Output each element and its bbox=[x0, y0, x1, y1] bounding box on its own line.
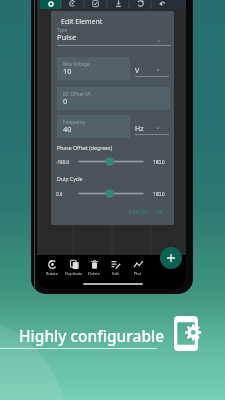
staticText: Edit Element bbox=[61, 17, 103, 27]
staticText: 0.0 bbox=[56, 191, 63, 197]
staticText: Duty Cycle bbox=[57, 175, 83, 182]
button[interactable]: Add element bbox=[160, 247, 182, 269]
staticText: Delete bbox=[88, 271, 100, 276]
button[interactable]: Save bbox=[107, 0, 130, 9]
staticText: 0 bbox=[63, 96, 68, 106]
staticText: Duplicate bbox=[65, 271, 83, 276]
button[interactable]: Frequency bbox=[57, 115, 130, 138]
staticText: Rotate bbox=[46, 271, 58, 276]
button[interactable]: Rotate bbox=[42, 255, 62, 276]
staticText: CANCEL bbox=[129, 209, 148, 216]
button[interactable]: Checklist bbox=[84, 0, 107, 9]
button[interactable]: Record bbox=[40, 0, 61, 9]
button[interactable]: Plot bbox=[128, 255, 148, 276]
staticText: 10 bbox=[63, 66, 72, 76]
staticText: 40 bbox=[63, 124, 72, 134]
staticText: Plot bbox=[134, 271, 142, 276]
staticText: OK bbox=[156, 209, 164, 216]
staticText: Type bbox=[57, 27, 68, 33]
button[interactable] bbox=[77, 156, 145, 167]
button[interactable]: CANCEL bbox=[127, 207, 150, 218]
button[interactable]: Refresh bbox=[129, 0, 152, 9]
button[interactable]: DC Offset (V) bbox=[57, 87, 170, 110]
staticText: Hz bbox=[135, 124, 144, 134]
staticText: -180.0 bbox=[56, 159, 70, 165]
button[interactable]: Undo bbox=[151, 0, 174, 9]
staticText: 100.0 bbox=[153, 191, 165, 197]
staticText: V bbox=[135, 66, 140, 76]
staticText: Frequency bbox=[63, 119, 86, 125]
button[interactable] bbox=[77, 188, 145, 199]
staticText: Highly configurable bbox=[19, 325, 165, 346]
staticText: Phase Offset (degrees) bbox=[57, 144, 113, 151]
button[interactable]: Duplicate bbox=[64, 255, 84, 276]
button[interactable]: Edit bbox=[105, 255, 125, 276]
staticText: DC Offset (V) bbox=[63, 91, 91, 97]
staticText: 180.0 bbox=[153, 159, 165, 165]
button[interactable]: Delete bbox=[84, 255, 104, 276]
staticText: Max Voltage bbox=[63, 61, 90, 67]
staticText: Pulse bbox=[57, 32, 77, 42]
button[interactable]: Max Voltage bbox=[57, 57, 130, 80]
button[interactable]: History bbox=[61, 0, 84, 9]
staticText: Edit bbox=[112, 271, 119, 276]
button[interactable]: OK bbox=[154, 207, 166, 218]
